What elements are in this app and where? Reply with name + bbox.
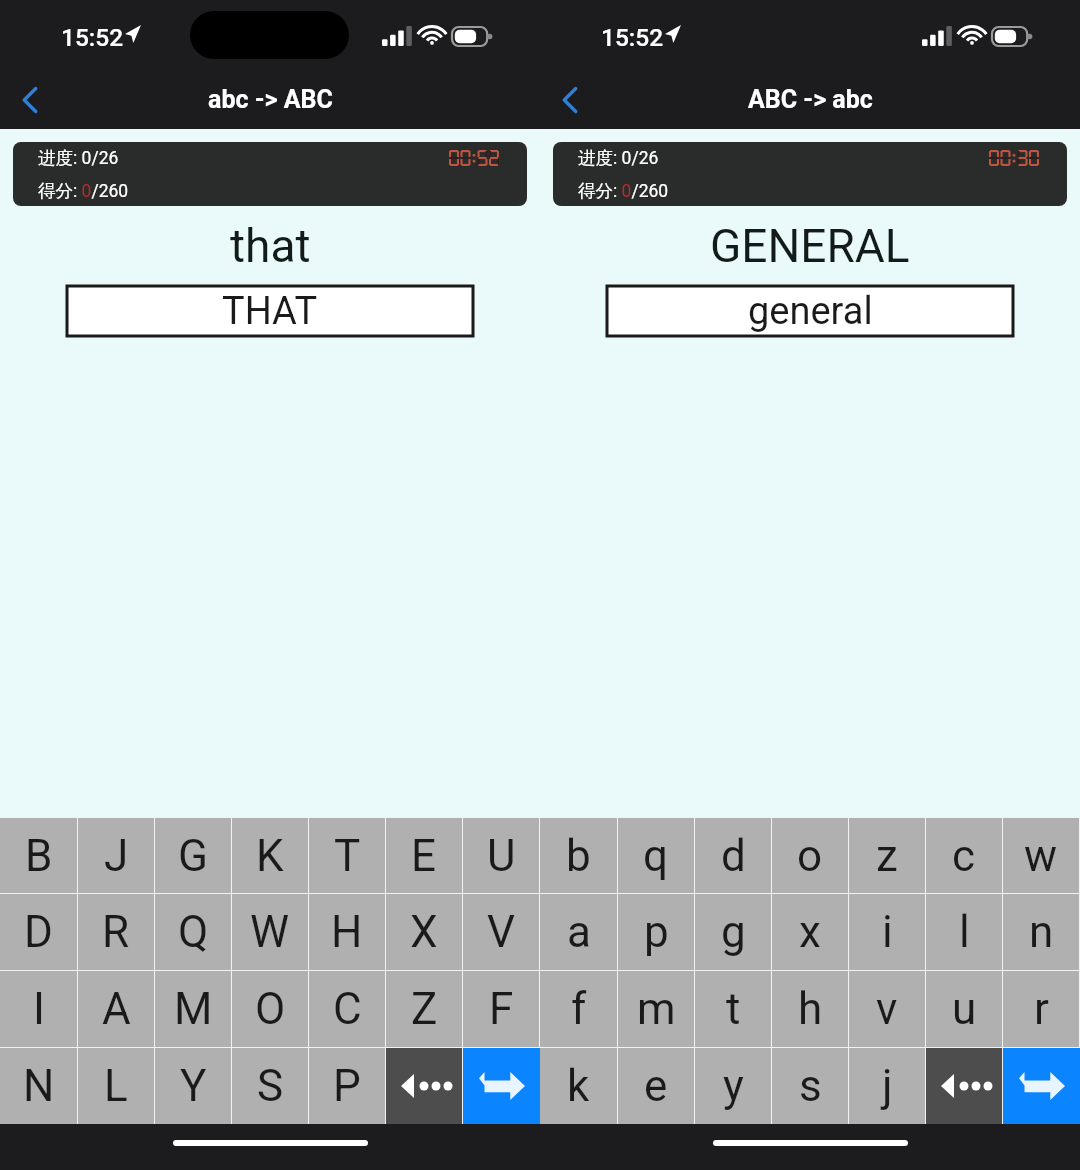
staticText: 得分: 0/260 (38, 180, 129, 202)
button[interactable]: w (1003, 818, 1079, 893)
button[interactable]: Back (0, 70, 60, 129)
button[interactable]: Backspace (926, 1048, 1002, 1124)
staticText: c (952, 830, 976, 882)
button[interactable]: i (849, 894, 925, 970)
button[interactable]: k (540, 1048, 617, 1124)
staticText: D (24, 906, 53, 958)
button[interactable]: z (849, 818, 925, 893)
button[interactable]: b (540, 818, 617, 893)
button[interactable]: X (386, 894, 462, 970)
button[interactable]: E (386, 818, 462, 893)
button[interactable]: general (607, 286, 1013, 336)
button[interactable]: K (232, 818, 308, 893)
button[interactable]: Back (540, 70, 600, 129)
staticText: n (1029, 906, 1054, 958)
button[interactable]: l (926, 894, 1002, 970)
staticText: x (799, 906, 821, 958)
staticText: S (257, 1060, 284, 1112)
staticText: d (721, 830, 746, 882)
staticText: L (104, 1060, 128, 1112)
button[interactable]: M (155, 971, 231, 1047)
button[interactable]: t (695, 971, 771, 1047)
button[interactable]: V (463, 894, 539, 970)
staticText: general (748, 289, 873, 334)
button[interactable]: a (540, 894, 617, 970)
staticText: I (33, 983, 45, 1035)
staticText: z (876, 830, 898, 882)
staticText: Y (180, 1060, 207, 1112)
staticText: q (643, 830, 669, 882)
staticText: C (333, 983, 362, 1035)
button[interactable]: p (618, 894, 694, 970)
button[interactable]: P (309, 1048, 385, 1124)
button[interactable]: h (772, 971, 848, 1047)
staticText: U (487, 830, 516, 882)
button[interactable]: U (463, 818, 539, 893)
button[interactable]: o (772, 818, 848, 893)
staticText: X (410, 906, 438, 958)
button[interactable]: y (695, 1048, 771, 1124)
staticText: f (571, 983, 587, 1035)
staticText: P (333, 1060, 361, 1112)
staticText: B (25, 830, 53, 882)
button[interactable]: r (1003, 971, 1079, 1047)
button[interactable]: G (155, 818, 231, 893)
button[interactable]: u (926, 971, 1002, 1047)
button[interactable]: A (78, 971, 154, 1047)
button[interactable]: W (232, 894, 308, 970)
staticText: W (250, 906, 290, 958)
staticText: m (637, 983, 676, 1035)
button[interactable]: d (695, 818, 771, 893)
button[interactable]: J (78, 818, 154, 893)
button[interactable]: n (1003, 894, 1079, 970)
button[interactable]: Enter (463, 1048, 540, 1124)
button[interactable]: j (849, 1048, 925, 1124)
button[interactable]: q (618, 818, 694, 893)
button[interactable]: T (309, 818, 385, 893)
staticText: K (256, 830, 284, 882)
button[interactable]: L (78, 1048, 154, 1124)
staticText: M (174, 983, 213, 1035)
button[interactable]: Backspace (386, 1048, 462, 1124)
button[interactable]: e (618, 1048, 694, 1124)
button[interactable]: C (309, 971, 385, 1047)
staticText: a (567, 906, 591, 958)
button[interactable]: g (695, 894, 771, 970)
staticText: g (721, 906, 746, 958)
button[interactable]: O (232, 971, 308, 1047)
button[interactable]: F (463, 971, 539, 1047)
button[interactable]: S (232, 1048, 308, 1124)
staticText: J (104, 830, 129, 882)
button[interactable]: N (0, 1048, 77, 1124)
button[interactable]: H (309, 894, 385, 970)
button[interactable]: Enter (1003, 1048, 1080, 1124)
button[interactable]: m (618, 971, 694, 1047)
button[interactable]: Y (155, 1048, 231, 1124)
staticText: A (102, 983, 131, 1035)
button[interactable]: B (0, 818, 77, 893)
button[interactable]: c (926, 818, 1002, 893)
button[interactable]: R (78, 894, 154, 970)
staticText: b (566, 830, 591, 882)
button[interactable]: s (772, 1048, 848, 1124)
staticText: i (882, 906, 893, 958)
button[interactable]: THAT (67, 286, 473, 336)
staticText: 得分: 0/260 (578, 180, 669, 202)
staticText: j (882, 1060, 893, 1112)
button[interactable]: I (0, 971, 77, 1047)
staticText: 进度: 0/26 (578, 147, 659, 169)
staticText: V (487, 906, 516, 958)
button[interactable]: f (540, 971, 617, 1047)
staticText: 15:52 (601, 23, 664, 52)
button[interactable]: D (0, 894, 77, 970)
button[interactable]: v (849, 971, 925, 1047)
staticText: h (798, 983, 823, 1035)
staticText: that (230, 219, 311, 273)
button[interactable]: Q (155, 894, 231, 970)
staticText: THAT (222, 289, 318, 334)
staticText: o (797, 830, 823, 882)
staticText: l (959, 906, 970, 958)
button[interactable]: x (772, 894, 848, 970)
staticText: O (255, 983, 286, 1035)
button[interactable]: Z (386, 971, 462, 1047)
